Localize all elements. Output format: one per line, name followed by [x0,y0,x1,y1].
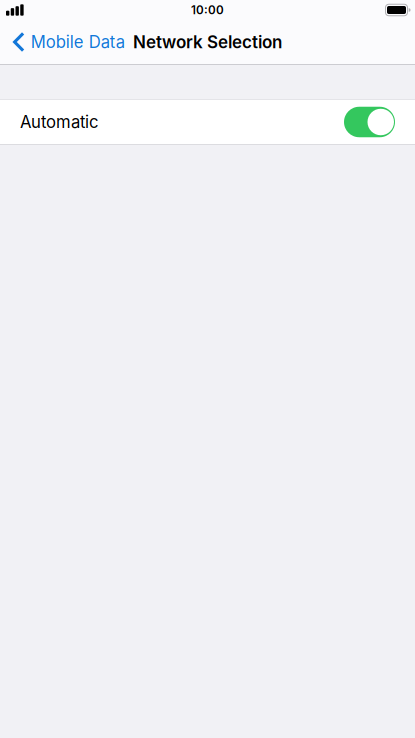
staticText: Automatic [20,112,99,132]
staticText: Network Selection [133,32,282,52]
button[interactable]: Mobile Data [0,20,133,64]
button[interactable]: On [0,100,415,144]
staticText: Mobile Data [31,32,125,52]
staticText: 10:00 [191,3,224,17]
